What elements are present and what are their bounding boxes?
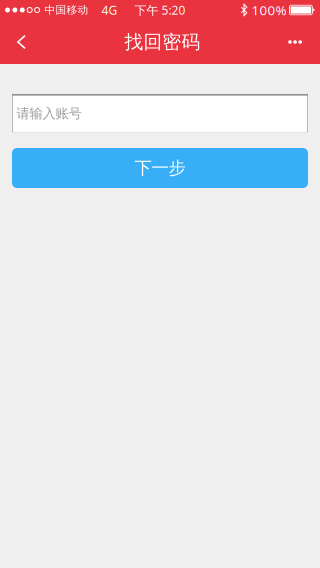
staticText: 4G (102, 2, 118, 18)
button[interactable]: Back (0, 20, 42, 64)
staticText: 找回密码 (124, 30, 200, 53)
staticText: 中国移动 (45, 3, 89, 16)
staticText: 请输入账号 (16, 105, 81, 122)
button[interactable]: 请输入账号 (12, 94, 308, 133)
button[interactable]: More options (272, 20, 320, 64)
button[interactable]: 下一步 (12, 148, 308, 188)
staticText: 下午 5:20 (134, 2, 185, 18)
staticText: 下一步 (134, 157, 185, 179)
staticText: 100% (251, 1, 286, 19)
